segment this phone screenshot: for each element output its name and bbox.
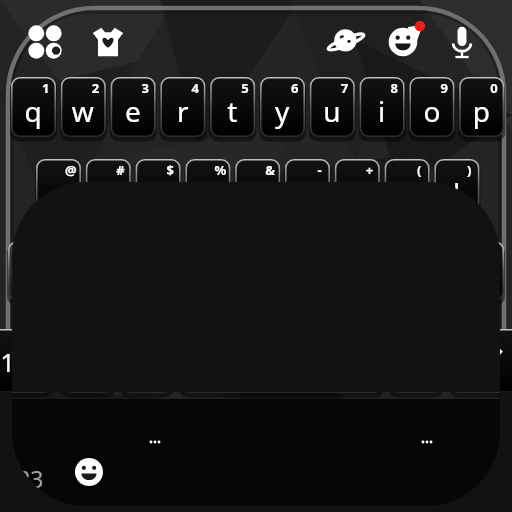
button[interactable]: q (11, 77, 56, 137)
button[interactable]: Enter (450, 329, 512, 393)
button[interactable]: r (160, 77, 205, 137)
button[interactable]: 123 (0, 329, 52, 393)
button[interactable]: l (434, 159, 479, 219)
button[interactable]: h (285, 159, 330, 219)
button[interactable]: w (60, 77, 105, 137)
button[interactable]: Emoji (386, 24, 423, 61)
button[interactable]: o (409, 77, 454, 137)
button[interactable]: u (309, 77, 354, 137)
button[interactable]: Stickers (91, 25, 125, 59)
button[interactable]: i (359, 77, 404, 137)
button[interactable]: Space (180, 329, 383, 393)
button[interactable]: f (185, 159, 230, 219)
button[interactable]: e (110, 77, 155, 137)
button[interactable]: Voice input (444, 24, 479, 59)
button[interactable]: a (36, 159, 81, 219)
button[interactable]: y (260, 77, 305, 137)
button[interactable]: s (85, 159, 130, 219)
button[interactable]: k (384, 159, 429, 219)
button[interactable]: Shift (8, 241, 64, 301)
button[interactable]: t (210, 77, 255, 137)
button[interactable]: Space (329, 25, 362, 58)
button[interactable]: g (235, 159, 280, 219)
button[interactable]: p (459, 77, 504, 137)
button[interactable]: Themes (29, 26, 61, 58)
button[interactable]: j (334, 159, 379, 219)
button[interactable]: Backspace (443, 241, 504, 301)
button[interactable]: d (135, 159, 180, 219)
